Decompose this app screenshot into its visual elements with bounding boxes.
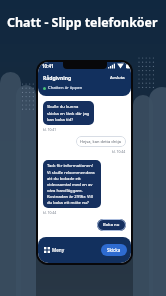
staticText: Chatt - Slipp telefonköer: [7, 14, 158, 31]
staticText: Chatten är öppen: [48, 85, 83, 91]
staticText: kl. 10:41: [43, 127, 57, 132]
staticText: Tack för informationen! Vi skulle rekomm…: [47, 163, 97, 205]
button[interactable]: Boka nu: [97, 219, 126, 231]
button[interactable]: Meny: [42, 245, 67, 255]
staticText: kl. 10:44: [43, 210, 57, 215]
staticText: Rådgivning: [43, 75, 72, 82]
staticText: Boka nu: [103, 222, 120, 228]
button[interactable]: Avsluta: [108, 74, 127, 82]
staticText: Skicka: [107, 247, 121, 253]
staticText: kl. 10:44: [112, 149, 126, 154]
button[interactable]: Skicka: [101, 244, 127, 256]
staticText: Hejsa, kan detta dröja: [80, 139, 122, 144]
staticText: Avsluta: [110, 75, 125, 81]
staticText: Skulle du kunna skicka en länk där jag k…: [47, 104, 90, 122]
staticText: 10:41: [42, 63, 54, 69]
staticText: Meny: [52, 247, 65, 253]
